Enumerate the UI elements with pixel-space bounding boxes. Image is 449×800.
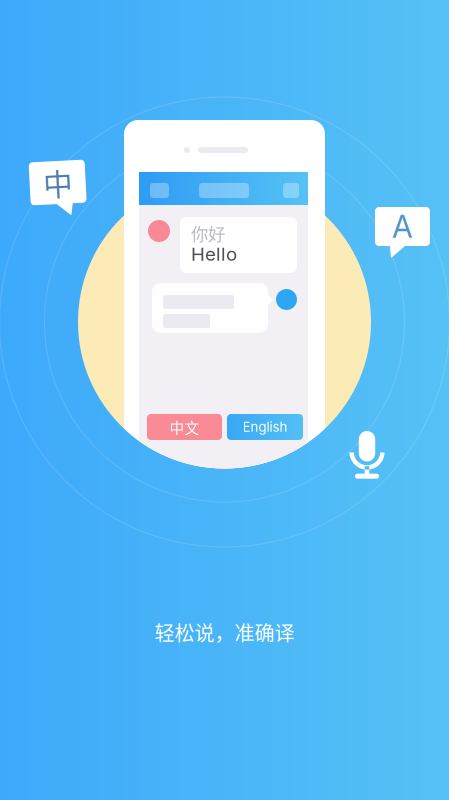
staticText: English [242, 419, 287, 435]
button[interactable]: English [227, 414, 303, 440]
staticText: Hello [191, 243, 237, 265]
staticText: 你好 [191, 220, 225, 246]
staticText: 中 [43, 161, 72, 204]
staticText: 轻松说，准确译 [154, 617, 294, 646]
button[interactable]: 中文 [147, 414, 222, 440]
staticText: 中文 [169, 416, 199, 438]
staticText: A [392, 208, 413, 245]
